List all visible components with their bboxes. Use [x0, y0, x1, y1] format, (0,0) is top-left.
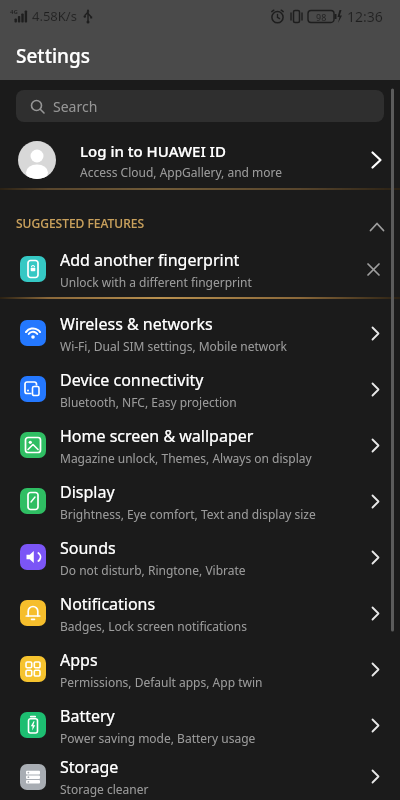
button[interactable]: Display [0, 473, 400, 529]
staticText: Log in to HUAWEI ID [80, 141, 226, 161]
button[interactable]: Log in to HUAWEI ID [0, 132, 400, 188]
staticText: Access Cloud, AppGallery, and more [80, 164, 283, 180]
staticText: SUGGESTED FEATURES [16, 215, 145, 231]
button[interactable]: Sounds [0, 529, 400, 585]
staticText: Settings [16, 43, 90, 69]
staticText: Wi-Fi, Dual SIM settings, Mobile network [60, 338, 287, 354]
staticText: 4G [10, 8, 18, 16]
staticText: Battery [60, 705, 115, 727]
button[interactable]: Apps [0, 641, 400, 697]
staticText: Power saving mode, Battery usage [60, 730, 256, 746]
staticText: Brightness, Eye comfort, Text and displa… [60, 506, 316, 522]
staticText: Wireless & networks [60, 313, 213, 335]
staticText: Home screen & wallpaper [60, 425, 254, 447]
staticText: Device connectivity [60, 369, 204, 391]
button[interactable]: Notifications [0, 585, 400, 641]
staticText: Notifications [60, 593, 156, 615]
staticText: Do not disturb, Ringtone, Vibrate [60, 562, 246, 578]
staticText: Unlock with a different fingerprint [60, 274, 252, 290]
button[interactable]: Battery [0, 697, 400, 753]
button[interactable]: Device connectivity [0, 361, 400, 417]
staticText: Search [53, 97, 98, 116]
staticText: 4.58K/s [32, 7, 77, 25]
button[interactable]: Wireless & networks [0, 305, 400, 361]
staticText: 12:36 [347, 7, 383, 26]
staticText: Sounds [60, 537, 116, 559]
staticText: Storage [60, 756, 119, 778]
staticText: Display [60, 481, 115, 503]
staticText: Storage cleaner [60, 781, 149, 797]
staticText: Permissions, Default apps, App twin [60, 674, 263, 690]
staticText: Apps [60, 649, 98, 671]
staticText: Bluetooth, NFC, Easy projection [60, 394, 237, 410]
staticText: Add another fingerprint [60, 249, 240, 271]
staticText: 98 [316, 11, 327, 23]
button[interactable] [370, 223, 384, 231]
button[interactable]: Search [16, 90, 384, 122]
staticText: Badges, Lock screen notifications [60, 618, 247, 634]
button[interactable]: Storage [0, 753, 400, 800]
button[interactable]: Add another fingerprint [0, 241, 400, 297]
staticText: Magazine unlock, Themes, Always on displ… [60, 450, 312, 466]
button[interactable]: Home screen & wallpaper [0, 417, 400, 473]
